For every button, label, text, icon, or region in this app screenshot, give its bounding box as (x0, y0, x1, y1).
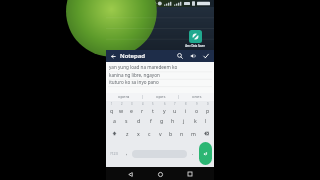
staticText: 8 (185, 102, 187, 106)
button[interactable]: Recent apps (184, 168, 196, 180)
staticText: 9 (196, 102, 198, 106)
staticText: yan yung load na maredeem ko kanina ng l… (109, 64, 178, 85)
button[interactable]: 5 (148, 101, 158, 114)
staticText: m (191, 130, 196, 137)
button[interactable]: Back (124, 168, 136, 180)
staticText: n (180, 130, 184, 137)
staticText: h (171, 117, 175, 124)
staticText: 2 (121, 102, 123, 106)
staticText: t (152, 107, 154, 114)
staticText: v (159, 130, 162, 137)
staticText: d (137, 117, 141, 124)
button[interactable]: 0 (203, 101, 213, 114)
staticText: r (141, 107, 144, 114)
button[interactable]: opes (143, 93, 178, 101)
button[interactable]: opera (106, 93, 142, 101)
staticText: 0 (207, 102, 209, 106)
staticText: x (137, 130, 140, 137)
button[interactable]: 8 (181, 101, 191, 114)
button[interactable]: 7 (170, 101, 180, 114)
staticText: b (169, 130, 173, 137)
button[interactable]: Home (154, 168, 166, 180)
button[interactable]: h (168, 114, 178, 127)
button[interactable]: ?123 (107, 141, 121, 166)
button[interactable]: 3 (127, 101, 136, 114)
button[interactable]: z (122, 127, 132, 140)
button[interactable]: Period (188, 141, 197, 166)
button[interactable]: Backspace (199, 127, 213, 140)
button[interactable]: n (177, 127, 187, 140)
staticText: , (126, 150, 128, 157)
staticText: Ame Data Saver (185, 44, 205, 48)
staticText: 6 (164, 102, 166, 106)
staticText: q (110, 107, 114, 114)
staticText: . (192, 150, 194, 157)
staticText: 7 (174, 102, 176, 106)
button[interactable]: s (121, 114, 132, 127)
staticText: 4 (142, 102, 144, 106)
button[interactable]: Shift (107, 127, 121, 140)
button[interactable]: yan yung load na maredeem ko kanina ng l… (106, 62, 214, 93)
button[interactable]: Back (109, 52, 118, 61)
button[interactable]: l (201, 114, 211, 127)
staticText: ?123 (110, 151, 118, 156)
button[interactable]: ones (179, 93, 214, 101)
staticText: w (119, 107, 124, 114)
staticText: i (185, 107, 187, 114)
staticText: 5 (152, 102, 154, 106)
button[interactable]: Search (175, 51, 185, 61)
staticText: f (150, 117, 152, 124)
button[interactable]: b (166, 127, 176, 140)
staticText: o (195, 107, 199, 114)
button[interactable]: k (190, 114, 200, 127)
button[interactable]: 2 (117, 101, 126, 114)
button[interactable]: Ame Data Saver app (185, 30, 205, 48)
button[interactable]: 1 (107, 101, 116, 114)
button[interactable]: x (133, 127, 143, 140)
staticText: z (126, 130, 129, 137)
staticText: c (148, 130, 151, 137)
staticText: opera (118, 94, 130, 100)
staticText: ones (192, 94, 202, 100)
button[interactable]: 9 (192, 101, 202, 114)
staticText: 1 (111, 102, 113, 106)
button[interactable]: a (109, 114, 120, 127)
staticText: a (113, 117, 116, 124)
staticText: 3 (131, 102, 133, 106)
staticText: p (206, 107, 210, 114)
staticText: j (183, 117, 185, 124)
staticText: s (125, 117, 128, 124)
button[interactable]: f (145, 114, 156, 127)
staticText: u (173, 107, 177, 114)
button[interactable]: Voice input (188, 51, 198, 61)
staticText: opes (156, 94, 166, 100)
staticText: Notepad (120, 52, 145, 60)
button[interactable]: 6 (159, 101, 169, 114)
button[interactable]: c (144, 127, 154, 140)
button[interactable]: g (157, 114, 167, 127)
staticText: l (205, 117, 207, 124)
button[interactable]: j (179, 114, 189, 127)
staticText: g (160, 117, 164, 124)
staticText: y (163, 107, 166, 114)
staticText: k (194, 117, 197, 124)
button[interactable]: Comma (122, 141, 131, 166)
staticText: e (130, 107, 133, 114)
button[interactable]: 4 (137, 101, 147, 114)
button[interactable]: Save note (201, 51, 211, 61)
button[interactable]: m (188, 127, 198, 140)
button[interactable]: d (133, 114, 144, 127)
button[interactable]: v (155, 127, 165, 140)
button[interactable]: Enter (199, 142, 212, 165)
